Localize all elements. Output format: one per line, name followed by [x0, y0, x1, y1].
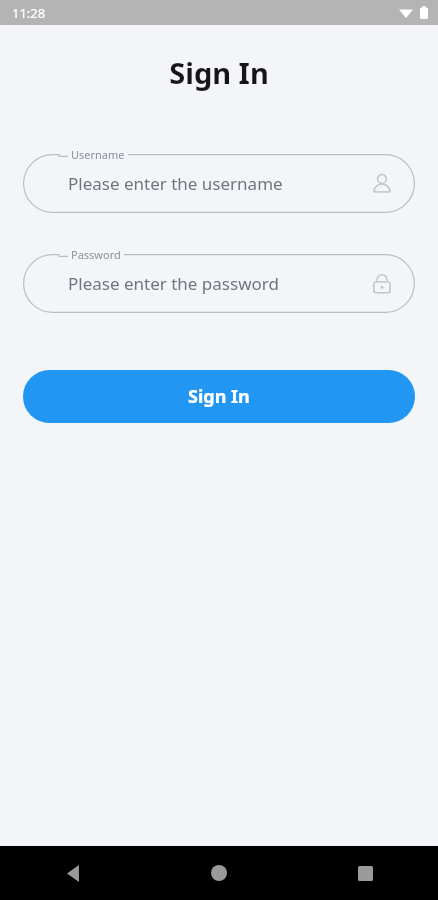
button[interactable]: Recents [292, 846, 438, 900]
staticText: Sign In [188, 384, 250, 409]
button[interactable]: Password [23, 254, 415, 313]
staticText: Please enter the password [68, 272, 279, 295]
other: Password [371, 273, 393, 295]
button[interactable]: Username [23, 154, 415, 213]
staticText: Please enter the username [68, 172, 283, 195]
button[interactable]: Sign In [23, 370, 415, 423]
button[interactable]: Home [146, 846, 292, 900]
button[interactable]: Back [0, 846, 146, 900]
other: Username [371, 173, 393, 195]
staticText: 11:28 [12, 4, 46, 22]
staticText: Password [71, 247, 121, 262]
staticText: Username [71, 147, 125, 162]
staticText: Sign In [169, 53, 269, 92]
